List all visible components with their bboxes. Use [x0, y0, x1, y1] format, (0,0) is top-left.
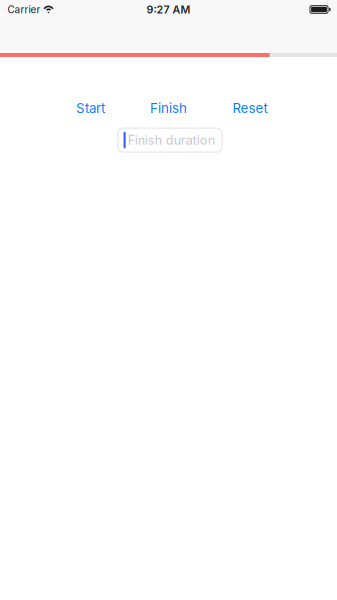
staticText: Start [76, 100, 105, 116]
staticText: 9:27 AM [146, 3, 190, 16]
staticText: Reset [232, 100, 267, 116]
staticText: Finish duration [128, 132, 215, 148]
button[interactable]: Start [66, 93, 115, 123]
button[interactable]: Reset [222, 93, 277, 123]
button[interactable]: Finish duration [118, 128, 222, 152]
button[interactable]: Finish [140, 93, 197, 123]
staticText: Finish [150, 100, 187, 116]
staticText: Carrier [7, 3, 40, 16]
